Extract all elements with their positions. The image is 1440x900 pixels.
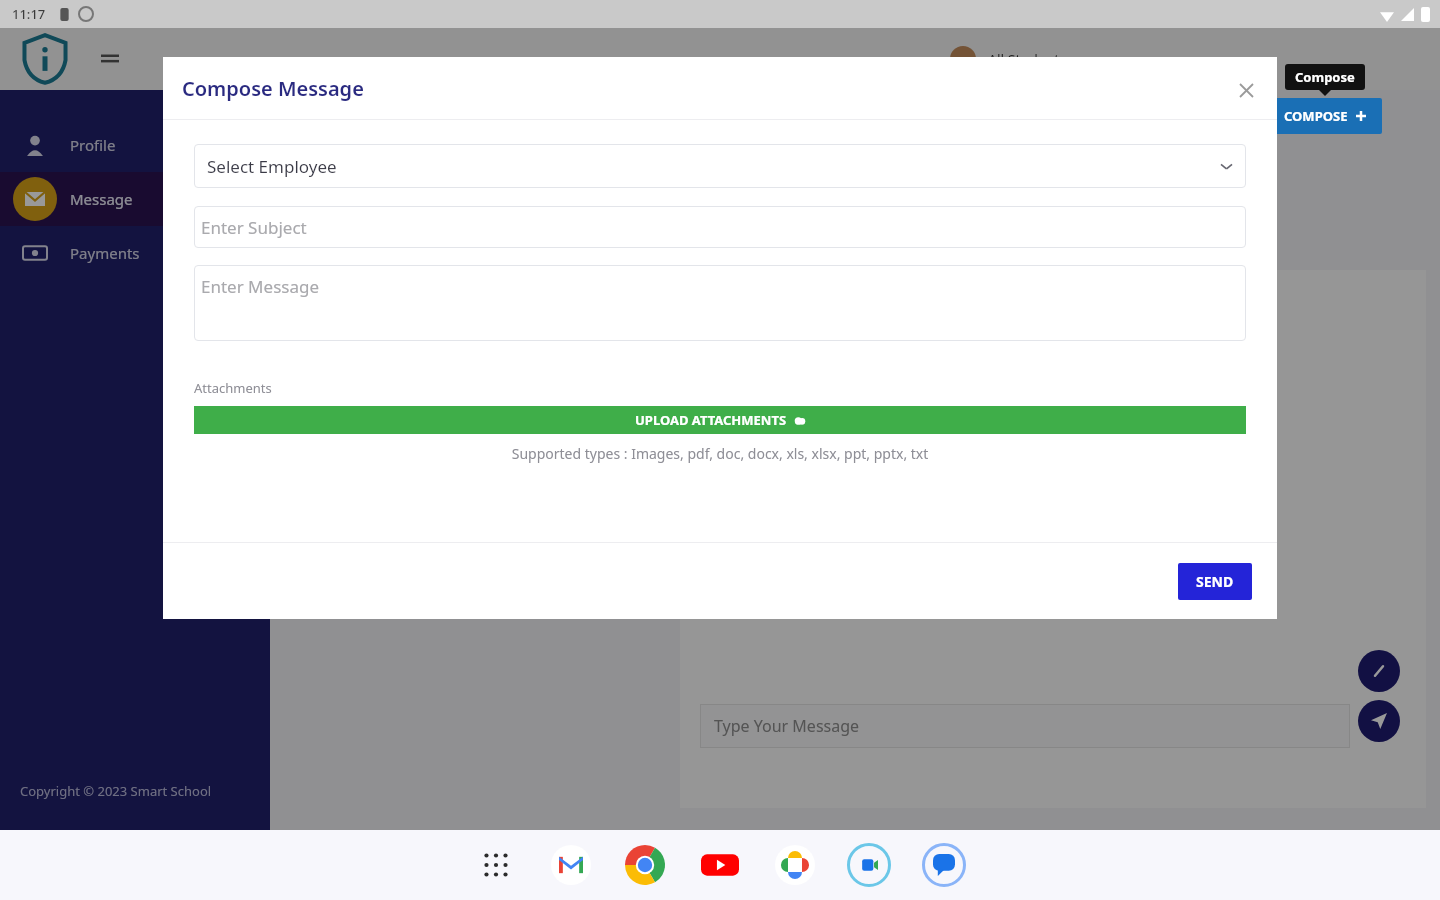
staticText: Attachments xyxy=(194,379,272,397)
button[interactable]: UPLOAD ATTACHMENTS xyxy=(194,406,1246,434)
button[interactable]: Enter Subject xyxy=(194,206,1246,248)
button[interactable]: Photos xyxy=(769,839,821,891)
button[interactable]: Gmail xyxy=(545,839,597,891)
button[interactable]: COMPOSE xyxy=(1268,98,1382,134)
staticText: Copyright © 2023 Smart School xyxy=(20,782,212,800)
button[interactable]: Chrome xyxy=(619,839,671,891)
staticText: COMPOSE xyxy=(1284,107,1348,125)
staticText: Type Your Message xyxy=(714,715,860,737)
staticText: Select Employee xyxy=(207,155,337,178)
button[interactable]: Attach xyxy=(1358,650,1400,692)
staticText: Compose xyxy=(1295,68,1355,86)
staticText: UPLOAD ATTACHMENTS xyxy=(635,411,787,429)
staticText: SEND xyxy=(1196,572,1234,591)
staticText: Payments xyxy=(70,243,140,263)
button[interactable]: SEND xyxy=(1178,563,1252,600)
button[interactable]: YouTube xyxy=(694,839,746,891)
button[interactable]: Menu xyxy=(90,39,130,79)
staticText: Compose Message xyxy=(182,75,364,102)
button[interactable]: Send xyxy=(1358,700,1400,742)
staticText: Enter Message xyxy=(201,275,319,298)
button[interactable]: Message xyxy=(0,172,270,226)
button[interactable]: Payments xyxy=(0,226,270,280)
staticText: Enter Subject xyxy=(201,216,307,239)
button[interactable]: Meet xyxy=(843,839,895,891)
staticText: All Student xyxy=(988,50,1060,69)
staticText: Message xyxy=(70,189,133,209)
button[interactable]: Select Employee xyxy=(194,144,1246,188)
button[interactable]: Messages xyxy=(918,839,970,891)
button[interactable]: Enter Message xyxy=(194,265,1246,341)
staticText: Supported types : Images, pdf, doc, docx… xyxy=(194,444,1246,463)
button[interactable]: Close xyxy=(1235,79,1257,101)
button[interactable]: Profile xyxy=(0,118,270,172)
button[interactable]: All apps xyxy=(470,839,522,891)
staticText: Profile xyxy=(70,135,116,155)
staticText: 11:17 xyxy=(12,5,46,23)
